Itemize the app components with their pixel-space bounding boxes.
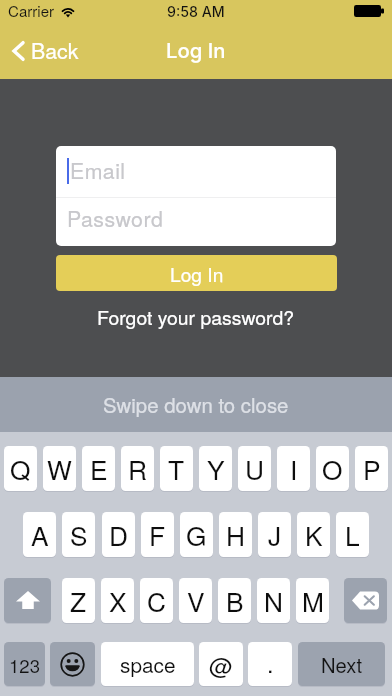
button[interactable]: L [336,512,369,557]
button[interactable]: Shift [4,578,51,623]
staticText: L [345,516,360,554]
staticText: . [267,646,274,680]
staticText: Swipe down to close [103,390,289,419]
staticText: 9:58 AM [167,3,225,20]
staticText: O [322,450,343,488]
staticText: A [31,516,49,554]
button[interactable]: V [179,578,212,623]
button[interactable]: Forgot your password? [89,298,303,336]
staticText: V [187,582,205,620]
button[interactable]: M [296,578,329,623]
staticText: 123 [9,652,41,679]
button[interactable]: O [316,446,349,491]
staticText: U [245,450,264,488]
staticText: G [186,516,207,554]
staticText: Log In [166,38,226,63]
button[interactable]: Q [4,446,37,491]
button[interactable]: W [43,446,76,491]
button[interactable]: B [218,578,251,623]
button[interactable]: Email [56,146,336,197]
staticText: Carrier [8,0,55,22]
staticText: Email [70,155,126,186]
staticText: Next [321,650,363,679]
staticText: Password [67,203,164,234]
staticText: T [168,450,185,488]
staticText: @ [209,648,233,682]
button[interactable]: X [101,578,134,623]
button[interactable]: N [257,578,290,623]
staticText: H [226,516,245,554]
staticText: Back [31,35,79,66]
button[interactable]: Password [56,198,336,246]
button[interactable]: H [219,512,252,557]
button[interactable]: A [23,512,56,557]
button[interactable]: . [248,642,292,686]
staticText: Q [10,450,31,488]
staticText: M [302,582,324,620]
staticText: D [109,516,128,554]
button[interactable]: T [160,446,193,491]
staticText: Y [207,450,225,488]
button[interactable]: U [238,446,271,491]
button[interactable]: Backspace [344,578,387,623]
button[interactable]: G [180,512,213,557]
staticText: B [226,582,244,620]
staticText: I [290,450,298,488]
button[interactable]: E [82,446,115,491]
button[interactable]: Back [8,29,83,72]
button[interactable]: R [121,446,154,491]
button[interactable]: P [355,446,388,491]
staticText: Log In [170,260,224,287]
staticText: Forgot your password? [97,303,295,331]
button[interactable]: Emoji [50,642,95,686]
button[interactable]: @ [199,642,243,686]
button[interactable]: Y [199,446,232,491]
staticText: space [120,649,176,679]
staticText: C [147,582,166,620]
button[interactable]: S [62,512,95,557]
staticText: F [149,516,166,554]
staticText: W [47,450,72,488]
button[interactable]: J [258,512,291,557]
button[interactable]: Swipe down to close [0,377,392,432]
staticText: K [305,516,323,554]
staticText: X [109,582,127,620]
button[interactable]: Next [298,642,385,686]
button[interactable]: 123 [4,642,45,686]
button[interactable]: space [101,642,194,686]
staticText: J [268,516,282,554]
staticText: N [264,582,283,620]
staticText: E [90,450,108,488]
button[interactable]: I [277,446,310,491]
button[interactable]: C [140,578,173,623]
button[interactable]: D [102,512,135,557]
button[interactable]: Z [62,578,95,623]
button[interactable]: K [297,512,330,557]
staticText: P [363,450,381,488]
button[interactable]: Log In [56,255,337,291]
staticText: Z [70,582,87,620]
button[interactable]: F [141,512,174,557]
staticText: R [128,450,147,488]
staticText: S [70,516,88,554]
